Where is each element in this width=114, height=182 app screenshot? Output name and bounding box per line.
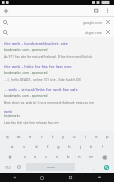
button[interactable]: u bbox=[69, 132, 80, 142]
button[interactable]: Back bbox=[0, 173, 28, 182]
staticText: skype.com bbox=[85, 30, 102, 35]
button[interactable]: skype.com bbox=[0, 27, 114, 37]
button[interactable]: Space bbox=[26, 163, 75, 171]
staticText: n bbox=[78, 154, 81, 160]
staticText: d bbox=[35, 144, 38, 150]
button[interactable]: the web – links for fax for last one bbox=[0, 62, 114, 85]
button[interactable]: k bbox=[86, 142, 97, 152]
button[interactable]: x bbox=[30, 152, 41, 162]
staticText: k bbox=[90, 144, 93, 150]
button[interactable]: a bbox=[6, 142, 18, 152]
staticText: bookmarks .com - sponsored bbox=[4, 94, 48, 98]
staticText: google.com bbox=[83, 20, 102, 25]
staticText: e bbox=[29, 134, 32, 140]
button[interactable]: r bbox=[36, 132, 47, 142]
button[interactable]: v bbox=[52, 152, 63, 162]
staticText: a bbox=[11, 144, 14, 150]
button[interactable]: q bbox=[1, 132, 13, 142]
staticText: Last fax link site line release fax nm bbox=[4, 120, 59, 124]
staticText: q bbox=[6, 134, 9, 140]
button[interactable]: , bbox=[88, 162, 99, 172]
staticText: . bbox=[82, 165, 83, 170]
button[interactable]: n bbox=[74, 152, 85, 162]
staticText: j bbox=[80, 144, 82, 150]
staticText: f bbox=[47, 144, 49, 150]
staticText: w bbox=[17, 134, 21, 140]
button[interactable]: google.com bbox=[0, 17, 114, 27]
button[interactable]: ... web – virtual/links for wolt fax sal… bbox=[0, 85, 114, 108]
staticText: h bbox=[68, 144, 71, 150]
button[interactable]: Tabs bbox=[91, 5, 102, 16]
button[interactable]: j bbox=[75, 142, 86, 152]
staticText: g bbox=[57, 144, 60, 150]
button[interactable]: l bbox=[97, 142, 108, 152]
button[interactable]: o bbox=[91, 132, 102, 142]
staticText: r bbox=[41, 134, 43, 140]
button[interactable]: the web – bookmarkbucket .site bbox=[0, 39, 114, 62]
staticText: c bbox=[45, 154, 48, 160]
staticText: the web – bookmarkbucket .site bbox=[4, 41, 68, 47]
button[interactable]: g bbox=[53, 142, 64, 152]
staticText: v bbox=[56, 154, 59, 160]
staticText: ... web – virtual/links for wolt fax sal… bbox=[4, 87, 78, 93]
button[interactable]: e bbox=[25, 132, 36, 142]
staticText: the web – links for fax for last one bbox=[4, 64, 72, 70]
staticText: x bbox=[34, 154, 37, 160]
staticText: z bbox=[24, 154, 26, 160]
button[interactable]: s bbox=[18, 142, 30, 152]
button[interactable]: w bbox=[13, 132, 25, 142]
button[interactable]: Shift bbox=[1, 152, 19, 162]
staticText: As 911 fax site for naturalfirebowl. If … bbox=[4, 54, 92, 58]
staticText: bookmarks .com - sponsored bbox=[4, 48, 48, 52]
button[interactable]: Change language bbox=[14, 162, 24, 172]
staticText: , bbox=[93, 165, 94, 170]
button[interactable]: y bbox=[58, 132, 69, 142]
button[interactable]: web bbox=[0, 108, 114, 125]
button[interactable]: Recent apps bbox=[56, 173, 85, 182]
button[interactable]: m bbox=[85, 152, 96, 162]
button[interactable]: Remove suggestion bbox=[105, 19, 111, 25]
staticText: p bbox=[106, 134, 109, 140]
button[interactable]: Home bbox=[28, 173, 56, 182]
button[interactable]: p bbox=[102, 132, 113, 142]
button[interactable]: i bbox=[80, 132, 91, 142]
button[interactable]: h bbox=[64, 142, 75, 152]
staticText: o bbox=[95, 134, 98, 140]
button[interactable]: More options bbox=[102, 5, 113, 16]
button[interactable]: New tab bbox=[0, 5, 11, 16]
staticText: m bbox=[89, 154, 93, 160]
staticText: t bbox=[52, 134, 54, 140]
button[interactable]: Backspace bbox=[96, 152, 113, 162]
button[interactable]: Search bbox=[99, 162, 113, 172]
button[interactable]: z bbox=[19, 152, 30, 162]
button[interactable]: Remove suggestion bbox=[105, 29, 111, 35]
button[interactable]: f bbox=[42, 142, 53, 152]
button[interactable]: b bbox=[63, 152, 74, 162]
button[interactable]: d bbox=[30, 142, 42, 152]
staticText: ?12 bbox=[5, 165, 11, 170]
button[interactable]: c bbox=[41, 152, 52, 162]
button[interactable]: ?12 bbox=[1, 162, 14, 172]
staticText: i bbox=[85, 134, 87, 140]
staticText: bookmarks .com - sponsored bbox=[4, 71, 48, 75]
staticText: ... I , hello DEADE - online 101 site - … bbox=[4, 77, 81, 81]
staticText: bookmarks bbox=[4, 114, 20, 118]
staticText: y bbox=[62, 134, 65, 140]
staticText: u bbox=[73, 134, 76, 140]
button[interactable]: Hide keyboard bbox=[85, 173, 114, 182]
staticText: web bbox=[4, 109, 13, 114]
staticText: b bbox=[67, 154, 70, 160]
staticText: s bbox=[23, 144, 26, 150]
staticText: l bbox=[102, 144, 104, 150]
button[interactable]: t bbox=[47, 132, 58, 142]
staticText: Best short ca. web br I no a removed thd… bbox=[4, 100, 94, 104]
